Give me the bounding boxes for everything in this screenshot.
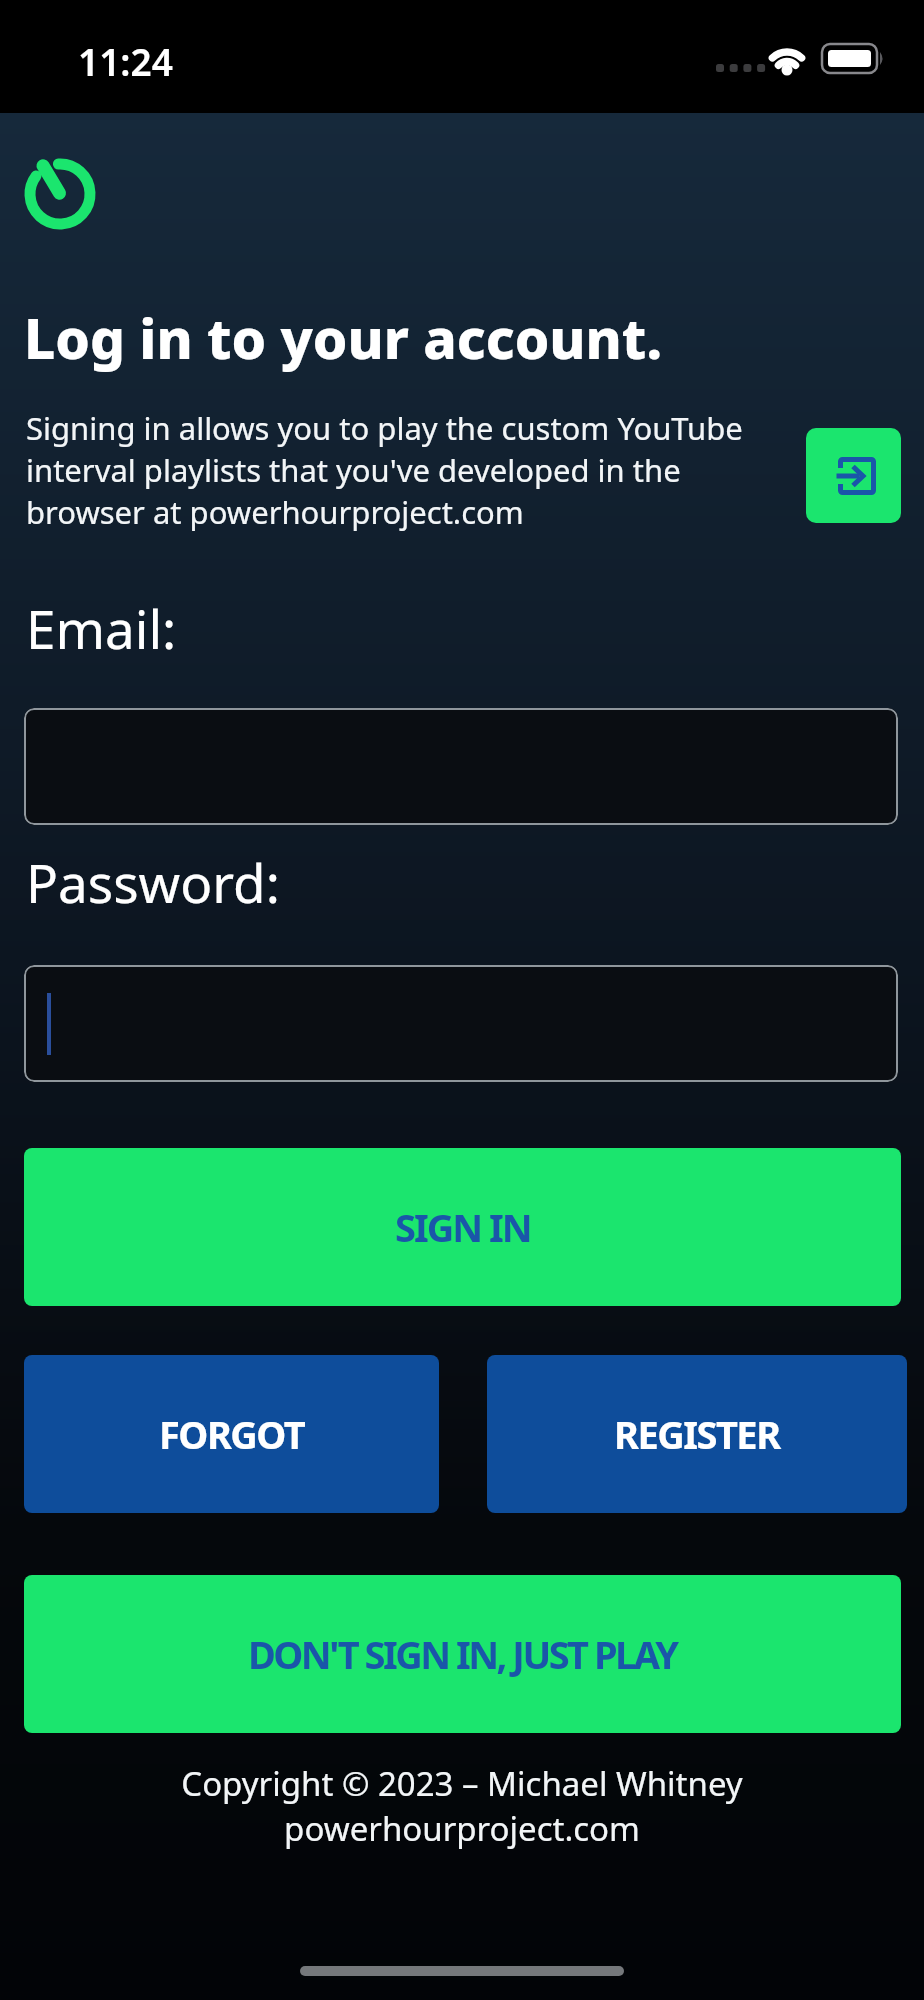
button[interactable]: SIGN IN (24, 1148, 901, 1306)
button[interactable]: DON'T SIGN IN, JUST PLAY (24, 1575, 901, 1733)
staticText: 11:24 (78, 36, 173, 86)
button[interactable]: FORGOT (24, 1355, 439, 1513)
button[interactable] (24, 708, 898, 825)
staticText: DON'T SIGN IN, JUST PLAY (248, 1628, 677, 1680)
staticText: Password: (26, 846, 280, 918)
staticText: Log in to your account. (24, 300, 663, 375)
staticText: Signing in allows you to play the custom… (26, 407, 743, 533)
button[interactable] (24, 965, 898, 1082)
button[interactable]: REGISTER (487, 1355, 907, 1513)
button[interactable] (806, 428, 901, 523)
staticText: SIGN IN (395, 1201, 531, 1253)
staticText: FORGOT (159, 1408, 305, 1460)
staticText: REGISTER (614, 1408, 780, 1460)
staticText: Copyright © 2023 – Michael Whitney power… (0, 1761, 924, 1850)
staticText: Email: (26, 592, 177, 664)
